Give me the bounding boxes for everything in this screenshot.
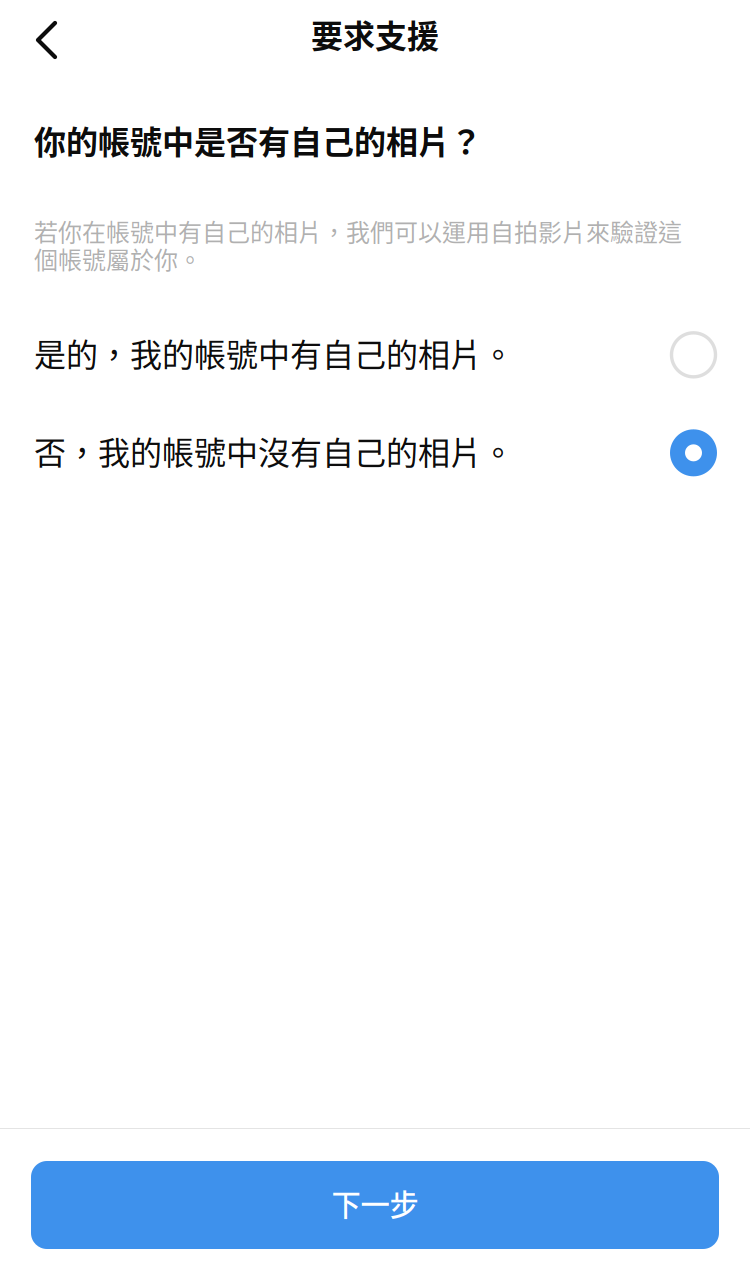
staticText: 是的，我的帳號中有自己的相片。 — [34, 330, 514, 376]
button[interactable]: 否，我的帳號中沒有自己的相片。 — [0, 423, 750, 483]
staticText: 你的帳號中是否有自己的相片？ — [34, 117, 482, 163]
button[interactable]: 是的，我的帳號中有自己的相片。 — [0, 325, 750, 385]
staticText: 若你在帳號中有自己的相片，我們可以運用自拍影片來驗證這個帳號屬於你。 — [34, 213, 682, 276]
staticText: 否，我的帳號中沒有自己的相片。 — [34, 428, 514, 474]
staticText: 下一步 — [331, 1182, 418, 1224]
staticText: 要求支援 — [311, 11, 439, 57]
button[interactable]: 下一步 — [31, 1161, 719, 1249]
button[interactable]: Back — [0, 0, 81, 80]
